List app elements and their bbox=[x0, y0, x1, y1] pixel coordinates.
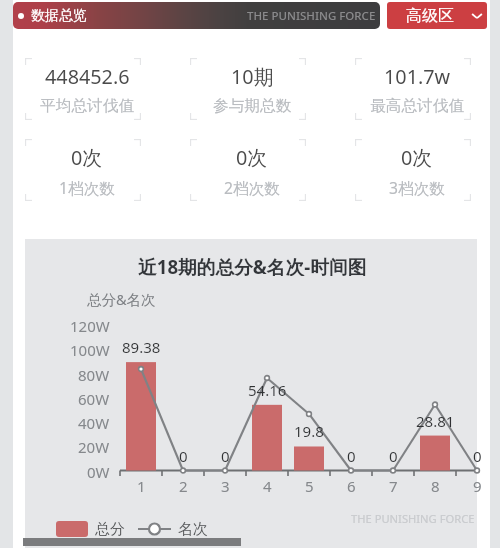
staticText: 近18期的总分&名次-时间图 bbox=[138, 254, 367, 276]
staticText: 6 bbox=[347, 476, 356, 494]
button[interactable]: 101.7w bbox=[355, 58, 471, 120]
staticText: 最高总讨伐值 bbox=[370, 96, 465, 116]
button[interactable]: 0次 bbox=[355, 139, 471, 201]
staticText: 0 bbox=[347, 446, 356, 464]
staticText: 7 bbox=[389, 476, 398, 494]
button[interactable]: 0次 bbox=[190, 139, 306, 201]
staticText: 10期 bbox=[231, 63, 274, 90]
button[interactable]: 10期 bbox=[190, 58, 306, 120]
staticText: 0 bbox=[389, 446, 398, 464]
staticText: 19.8 bbox=[294, 421, 324, 439]
staticText: 4 bbox=[263, 476, 272, 494]
staticText: 100W bbox=[70, 340, 110, 358]
staticText: 0次 bbox=[236, 144, 268, 171]
staticText: 120W bbox=[70, 316, 110, 334]
staticText: 3档次数 bbox=[389, 177, 446, 198]
staticText: 高级区 bbox=[406, 6, 454, 26]
staticText: 总分 bbox=[95, 520, 125, 537]
staticText: THE PUNISHING FORCE bbox=[351, 511, 475, 526]
staticText: 60W bbox=[78, 389, 110, 407]
staticText: 5 bbox=[305, 476, 314, 494]
staticText: 0次 bbox=[401, 144, 433, 171]
staticText: 2 bbox=[179, 476, 188, 494]
staticText: 40W bbox=[78, 413, 110, 431]
other: Expand region selector bbox=[470, 9, 484, 23]
staticText: THE PUNISHING FORCE bbox=[247, 8, 376, 24]
staticText: 平均总讨伐值 bbox=[40, 96, 135, 116]
staticText: 1 bbox=[137, 476, 146, 494]
button[interactable]: 高级区 bbox=[387, 2, 487, 29]
button[interactable]: 448452.6 bbox=[25, 58, 141, 120]
staticText: 总分&名次 bbox=[87, 289, 156, 309]
staticText: 101.7w bbox=[384, 63, 451, 90]
staticText: 0W bbox=[87, 462, 110, 480]
staticText: 3 bbox=[221, 476, 230, 494]
staticText: 8 bbox=[431, 476, 440, 494]
staticText: 1档次数 bbox=[59, 177, 116, 198]
staticText: 0次 bbox=[71, 144, 103, 171]
button[interactable]: 0次 bbox=[25, 139, 141, 201]
staticText: 80W bbox=[78, 365, 110, 383]
staticText: 54.16 bbox=[248, 380, 287, 398]
staticText: 数据总览 bbox=[31, 7, 87, 25]
staticText: 0 bbox=[473, 446, 482, 464]
staticText: 20W bbox=[78, 437, 110, 455]
staticText: 0 bbox=[179, 446, 188, 464]
staticText: 0 bbox=[221, 446, 230, 464]
staticText: 28.81 bbox=[416, 411, 455, 429]
button[interactable]: 数据总览 bbox=[13, 2, 380, 29]
staticText: 9 bbox=[473, 476, 482, 494]
staticText: 名次 bbox=[178, 520, 208, 537]
staticText: 参与期总数 bbox=[213, 96, 292, 116]
staticText: 448452.6 bbox=[45, 63, 130, 90]
staticText: 2档次数 bbox=[224, 177, 281, 198]
staticText: 89.38 bbox=[122, 337, 161, 355]
